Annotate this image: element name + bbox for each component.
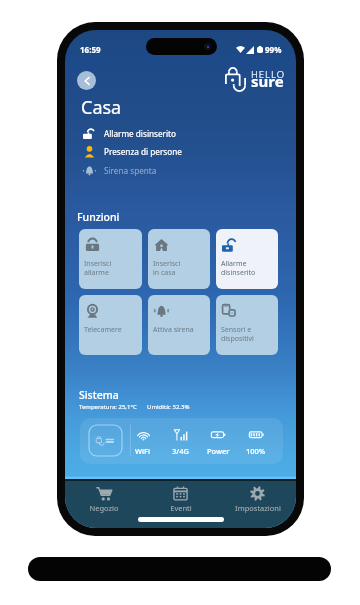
button[interactable]: 100% [238,423,274,459]
button[interactable]: Inserisci in casa [148,229,210,289]
staticText: Impostazioni [235,503,281,513]
button[interactable]: Telecamere [79,295,142,355]
button[interactable]: Inserisci allarme [79,229,142,289]
staticText: Eventi [170,503,192,513]
button[interactable]: Back [77,71,96,90]
staticText: sure [251,71,284,91]
button[interactable]: Sirena spenta [78,162,283,178]
staticText: Attiva sirena [153,325,194,335]
staticText: Sensori e dispositivi [221,325,254,343]
button[interactable]: Attiva sirena [148,295,210,355]
staticText: Negozio [89,503,119,513]
button[interactable]: 3/4G [162,423,198,459]
staticText: Telecamere [84,325,122,335]
staticText: Umidità: 52.3% [147,403,190,411]
staticText: Allarme disinserito [221,259,256,277]
staticText: Inserisci allarme [84,259,112,277]
button[interactable]: Impostazioni [219,481,296,528]
staticText: 100% [246,446,266,456]
button[interactable]: WiFi [125,423,161,459]
staticText: Allarme disinserito [104,128,177,139]
staticText: Temperatura: 25,1°C [79,403,137,411]
staticText: WiFi [135,446,151,456]
staticText: Inserisci in casa [153,259,181,277]
button[interactable]: Negozio [65,481,142,528]
button[interactable]: Power [200,423,236,459]
staticText: Presenza di persone [104,146,182,157]
staticText: Funzioni [77,210,120,224]
staticText: Sistema [79,388,119,402]
staticText: 99% [265,44,282,55]
staticText: 16:59 [80,44,101,55]
staticText: Casa [81,95,122,120]
staticText: HELLO [251,68,286,81]
button[interactable]: Hub [89,425,122,456]
button[interactable]: Allarme disinserito [78,125,283,141]
button[interactable]: Allarme disinserito [216,229,278,289]
button[interactable]: Presenza di persone [78,143,283,159]
button[interactable]: Sensori e dispositivi [216,295,278,355]
button[interactable]: Hello Sure [225,63,285,96]
staticText: 3/4G [172,446,189,456]
button[interactable]: Eventi [142,481,219,528]
staticText: Sirena spenta [104,165,157,176]
staticText: Power [207,446,230,456]
